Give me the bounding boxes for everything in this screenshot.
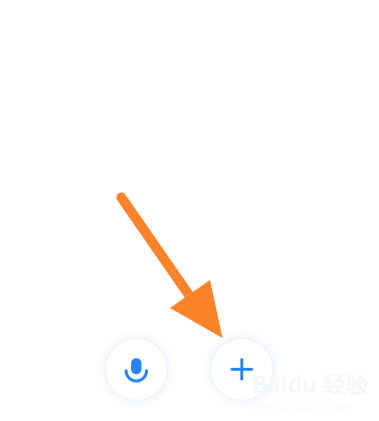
staticText: Baidu 经验 [252,369,369,399]
button[interactable]: Add [203,331,280,408]
button[interactable]: Voice input [98,331,175,408]
